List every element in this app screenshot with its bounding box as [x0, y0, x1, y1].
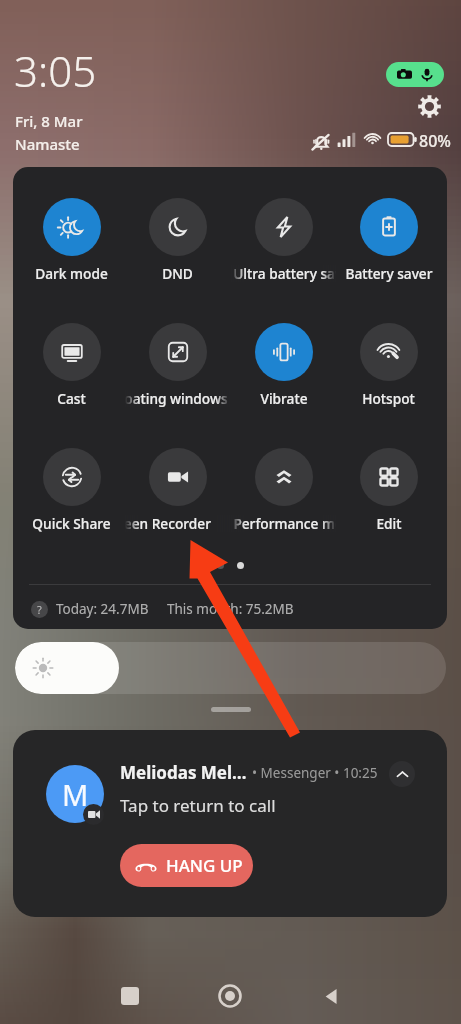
staticText: Tap to return to call: [120, 794, 276, 817]
button[interactable]: Performance mode: [231, 448, 336, 532]
staticText: Cast: [57, 389, 86, 408]
button[interactable]: [15, 642, 446, 694]
staticText: Today: 24.7MB: [56, 600, 149, 618]
button[interactable]: Back: [311, 976, 351, 1016]
button[interactable]: HANG UP: [120, 844, 253, 887]
staticText: DND: [162, 264, 193, 283]
button[interactable]: Battery saver: [336, 198, 441, 282]
button[interactable]: Home: [210, 976, 250, 1016]
staticText: Hotspot: [362, 389, 415, 408]
button[interactable]: Camera and microphone in use: [386, 62, 444, 87]
button[interactable]: Cast: [19, 323, 124, 407]
staticText: Vibrate: [260, 389, 308, 408]
button[interactable]: Vibrate: [231, 323, 336, 407]
staticText: 3:05: [14, 42, 97, 99]
staticText: M: [62, 775, 89, 814]
button[interactable]: Floating windows: [125, 323, 230, 407]
button[interactable]: Hotspot: [336, 323, 441, 407]
staticText: Ultra battery saver: [233, 265, 336, 282]
button[interactable]: Screen Recorder: [125, 448, 230, 532]
staticText: Fri, 8 Mar: [15, 111, 83, 131]
button[interactable]: Edit: [336, 448, 441, 532]
staticText: Edit: [376, 514, 402, 533]
staticText: ?: [37, 602, 42, 617]
button[interactable]: Quick Share: [19, 448, 124, 532]
button[interactable]: Expand notification: [383, 755, 421, 793]
button[interactable]: Settings: [413, 90, 445, 122]
button[interactable]: Recents: [110, 976, 150, 1016]
staticText: Battery saver: [345, 264, 433, 283]
staticText: 80%: [419, 130, 451, 152]
staticText: HANG UP: [166, 854, 243, 877]
staticText: Performance mode: [233, 515, 336, 532]
staticText: Screen Recorder: [125, 515, 211, 532]
staticText: Floating windows: [125, 390, 228, 407]
staticText: • Messenger • 10:25: [252, 764, 378, 782]
button[interactable]: DND: [125, 198, 230, 282]
button[interactable]: Dark mode: [19, 198, 124, 282]
staticText: This month: 75.2MB: [167, 600, 294, 618]
staticText: Dark mode: [35, 264, 108, 283]
staticText: Namaste: [15, 134, 80, 154]
staticText: Meliodas Mel…: [120, 761, 247, 784]
staticText: Quick Share: [32, 514, 111, 533]
button[interactable]: Ultra battery saver: [231, 198, 336, 282]
